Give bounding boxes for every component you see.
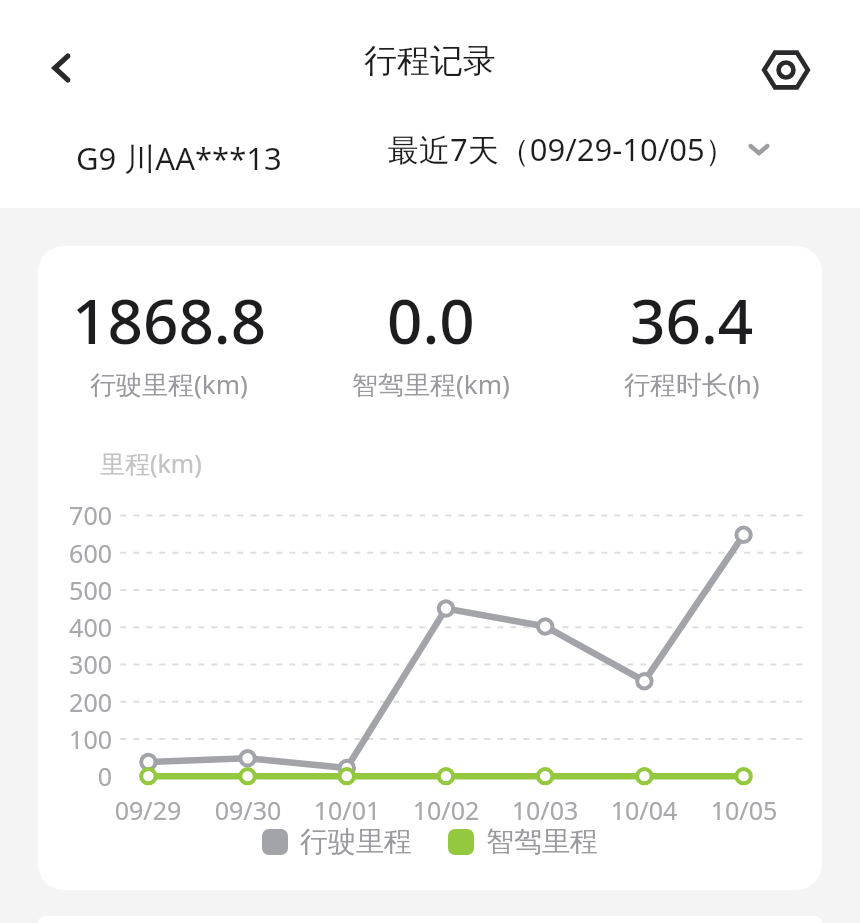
- button[interactable]: Settings: [744, 28, 828, 112]
- staticText: 行驶里程(km): [90, 366, 248, 402]
- staticText: 行驶里程: [300, 824, 412, 859]
- staticText: 600: [38, 536, 112, 570]
- staticText: 300: [38, 647, 112, 681]
- staticText: 里程(km): [100, 446, 202, 480]
- staticText: 行程时长(h): [624, 366, 760, 402]
- staticText: 智驾里程(km): [352, 366, 510, 402]
- staticText: 10/02: [391, 793, 501, 827]
- staticText: 200: [38, 685, 112, 719]
- staticText: 10/03: [490, 793, 600, 827]
- staticText: 1868.8: [72, 278, 267, 362]
- button[interactable]: Back: [22, 28, 102, 108]
- staticText: 400: [38, 610, 112, 644]
- staticText: G9 川AA***13: [76, 137, 282, 179]
- button[interactable]: 最近7天（09/29-10/05）: [388, 128, 774, 170]
- staticText: 700: [38, 498, 112, 532]
- staticText: 09/30: [193, 793, 303, 827]
- staticText: 100: [38, 722, 112, 756]
- staticText: 09/29: [93, 793, 203, 827]
- staticText: 0: [38, 759, 112, 793]
- staticText: 10/01: [292, 793, 402, 827]
- staticText: 行程记录: [0, 40, 860, 82]
- staticText: 最近7天（09/29-10/05）: [388, 128, 736, 170]
- button[interactable]: 行驶里程: [262, 824, 412, 859]
- staticText: 0.0: [387, 278, 475, 362]
- button[interactable]: 智驾里程: [448, 824, 598, 859]
- staticText: 10/05: [689, 793, 799, 827]
- staticText: 智驾里程: [486, 824, 598, 859]
- staticText: 10/04: [589, 793, 699, 827]
- staticText: 36.4: [630, 278, 754, 362]
- staticText: 500: [38, 573, 112, 607]
